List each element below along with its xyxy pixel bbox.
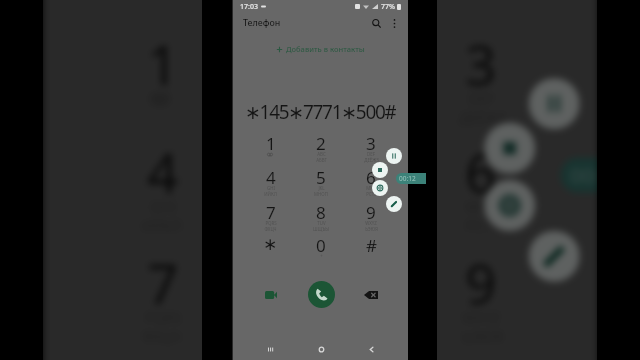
staticText: TUV [317,220,326,226]
staticText: 9 [465,247,497,320]
staticText: GHI [267,185,275,191]
staticText: 00:12 [570,161,624,189]
staticText: 2 [306,27,338,100]
button[interactable]: 2 [243,37,402,148]
staticText: 7 [266,201,276,224]
staticText: РСТУ [366,191,377,197]
button[interactable]: 2 [296,135,346,170]
staticText: PQRS [265,220,277,226]
staticText: 0 [316,234,326,257]
button[interactable]: Stop recording [372,162,388,178]
button[interactable]: 7 [245,204,296,239]
button[interactable]: Stop recording [484,123,535,174]
staticText: МНОП [300,215,344,234]
button[interactable]: Back [346,338,396,360]
staticText: 1 [266,132,276,155]
staticText: 6 [366,166,376,189]
staticText: 77% [381,2,395,12]
button[interactable]: Draw on screen [386,196,402,212]
staticText: 5 [316,166,326,189]
staticText: ABC [309,88,338,107]
button[interactable]: More options [386,15,402,31]
staticText: ∗145∗7771∗500# [245,99,396,121]
button[interactable]: Search [367,14,385,32]
staticText: WXYZ [365,220,377,226]
staticText: ДЕЁЖЗ [364,157,379,163]
staticText: 4 [147,135,179,209]
staticText: АБВГ [316,157,327,163]
button[interactable]: # [346,237,396,272]
staticText: 0 [306,352,338,360]
staticText: ∗ [263,234,278,254]
staticText: 5 [306,135,338,209]
button[interactable]: Home [296,338,346,360]
button[interactable]: 00:12 [396,173,426,184]
staticText: + [320,253,323,259]
staticText: DEF [367,151,375,157]
staticText: 9 [366,201,376,224]
button[interactable]: Добавить в контакты [271,42,370,56]
button[interactable]: Selfie camera [372,180,388,196]
button[interactable]: 4 [245,169,296,204]
button[interactable]: Pause recording [386,148,402,164]
staticText: ABC [317,151,326,157]
button[interactable]: 00:12 [561,158,640,193]
staticText: 3 [465,27,497,100]
button[interactable]: Recent apps [245,338,296,360]
button[interactable]: 1 [245,135,296,170]
button[interactable]: 5 [243,145,402,256]
button[interactable]: Draw on screen [529,231,580,282]
staticText: АБВГ [306,107,341,126]
button[interactable]: 3 [402,37,561,148]
button[interactable]: 3 [346,135,396,170]
staticText: 7 [147,247,179,320]
button[interactable]: 6 [346,169,396,204]
staticText: 3 [366,132,376,155]
button[interactable]: 8 [296,204,346,239]
staticText: ФХЦЧ [264,226,277,232]
button[interactable]: 4 [80,145,243,256]
staticText: JKL [313,196,335,215]
button[interactable]: 6 [402,145,561,256]
button[interactable]: Backspace [346,281,396,309]
staticText: 6 [465,135,497,209]
staticText: 1 [147,27,179,100]
staticText: Добавить в контакты [286,44,365,54]
button[interactable]: Pause recording [529,78,580,129]
staticText: РСТУ [465,215,500,234]
button[interactable]: 8 [243,256,402,360]
button[interactable]: 0 [296,237,346,272]
staticText: # [366,234,377,257]
staticText: TUV [309,307,338,326]
button[interactable]: Call [308,281,335,308]
button[interactable]: 7 [80,256,243,360]
staticText: 00:12 [399,174,416,183]
staticText: 8 [306,247,338,320]
staticText: MNO [465,196,500,215]
staticText: Телефон [243,17,281,29]
button[interactable]: Video call [245,281,296,309]
staticText: MNO [366,185,377,191]
staticText: ШЩЪЫ [313,226,329,232]
button[interactable]: 9 [402,256,561,360]
staticText: 4 [266,166,276,189]
staticText: 17:03 [240,2,258,12]
staticText: 8 [316,201,326,224]
staticText: МНОП [314,191,328,197]
staticText: ЬЭЮЯ [365,226,378,232]
staticText: ДЕЁЖЗ [459,107,506,126]
button[interactable]: 5 [296,169,346,204]
button[interactable]: Selfie camera [484,180,535,231]
staticText: ИЙКЛ [264,191,277,197]
button[interactable]: 9 [346,204,396,239]
button[interactable]: ∗ [245,237,296,272]
button[interactable]: 1 [80,37,243,148]
